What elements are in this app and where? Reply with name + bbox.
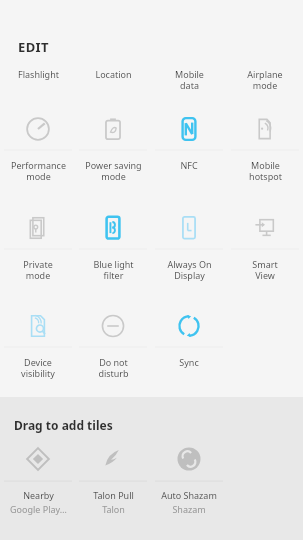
staticText: Power saving mode	[85, 159, 142, 183]
button[interactable]: Always On Display	[152, 208, 226, 298]
button[interactable]: Power saving mode	[76, 109, 150, 199]
staticText: Google Play…	[10, 503, 67, 515]
staticText: Airplane mode	[247, 68, 283, 92]
staticText: Talon	[102, 503, 125, 515]
button[interactable]: Mobile data	[152, 60, 226, 100]
button[interactable]: Blue light filter	[76, 208, 150, 298]
staticText: Sync	[179, 356, 199, 368]
button[interactable]: Performance mode	[1, 109, 75, 199]
staticText: Location	[95, 68, 132, 80]
staticText: Device visibility	[21, 356, 55, 380]
button[interactable]: Talon Pull	[76, 441, 150, 536]
staticText: Blue light filter	[93, 258, 134, 282]
button[interactable]: Airplane mode	[228, 60, 302, 100]
staticText: NFC	[180, 159, 198, 171]
button[interactable]: NFC	[152, 109, 226, 199]
staticText: Do not disturb	[98, 356, 129, 380]
button[interactable]: Nearby	[1, 441, 75, 536]
staticText: Mobile data	[175, 68, 204, 92]
staticText: Mobile hotspot	[249, 159, 282, 183]
button[interactable]: Private mode	[1, 208, 75, 298]
button[interactable]: Do not disturb	[76, 306, 150, 396]
staticText: Flashlight	[18, 68, 59, 80]
staticText: EDIT	[18, 38, 49, 56]
staticText: Smart View	[252, 258, 278, 282]
staticText: Performance mode	[11, 159, 66, 183]
staticText: Always On Display	[167, 258, 212, 282]
button[interactable]: Mobile hotspot	[228, 109, 302, 199]
button[interactable]: Smart View	[228, 208, 302, 298]
button[interactable]: Location	[76, 60, 150, 100]
staticText: Drag to add tiles	[14, 417, 113, 433]
staticText: Talon Pull	[93, 489, 134, 501]
button[interactable]: Device visibility	[1, 306, 75, 396]
staticText: Shazam	[172, 503, 206, 515]
button[interactable]: Flashlight	[1, 60, 75, 100]
button[interactable]: Sync	[152, 306, 226, 396]
staticText: Private mode	[23, 258, 53, 282]
staticText: Auto Shazam	[161, 489, 217, 501]
button[interactable]: Auto Shazam	[152, 441, 226, 536]
staticText: Nearby	[23, 489, 54, 501]
